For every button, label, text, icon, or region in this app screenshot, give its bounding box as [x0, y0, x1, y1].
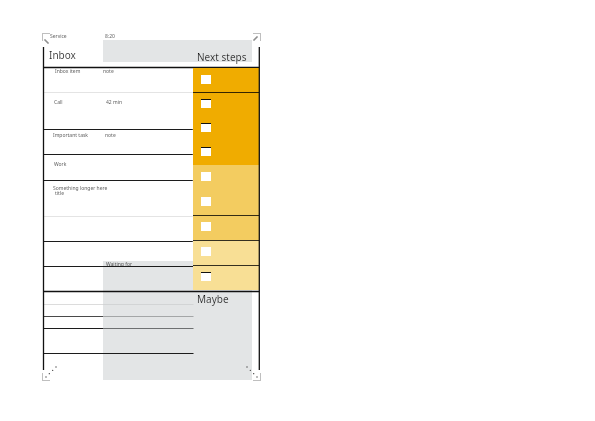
- button[interactable]: Task 1: [193, 68, 259, 92]
- staticText: title: [55, 190, 65, 197]
- button[interactable]: Task 2: [193, 92, 259, 116]
- button[interactable]: Task 4: [193, 140, 259, 165]
- button[interactable]: Maybe: [197, 292, 229, 306]
- staticText: note: [103, 68, 114, 75]
- staticText: Something longer here: [53, 185, 108, 192]
- button[interactable]: Task 5: [193, 165, 259, 190]
- staticText: Service: [50, 33, 67, 40]
- staticText: Work: [54, 161, 67, 168]
- button[interactable]: Task 7: [193, 215, 259, 240]
- staticText: Waiting for: [106, 261, 133, 268]
- button[interactable]: Task 3: [193, 116, 259, 140]
- staticText: Important task: [53, 132, 89, 139]
- button[interactable]: Task 6: [193, 190, 259, 215]
- staticText: Call: [54, 99, 63, 106]
- button[interactable]: Next steps: [197, 50, 247, 64]
- button[interactable]: Task 8: [193, 240, 259, 265]
- button[interactable]: Task 9: [193, 265, 259, 290]
- button[interactable]: Inbox: [49, 48, 76, 62]
- staticText: note: [105, 132, 116, 139]
- staticText: 8:20: [105, 33, 115, 40]
- staticText: Maybe: [197, 292, 229, 306]
- staticText: 42 min: [106, 99, 123, 106]
- staticText: Inbox item: [55, 68, 81, 75]
- staticText: Next steps: [197, 50, 247, 64]
- staticText: Inbox: [49, 48, 76, 62]
